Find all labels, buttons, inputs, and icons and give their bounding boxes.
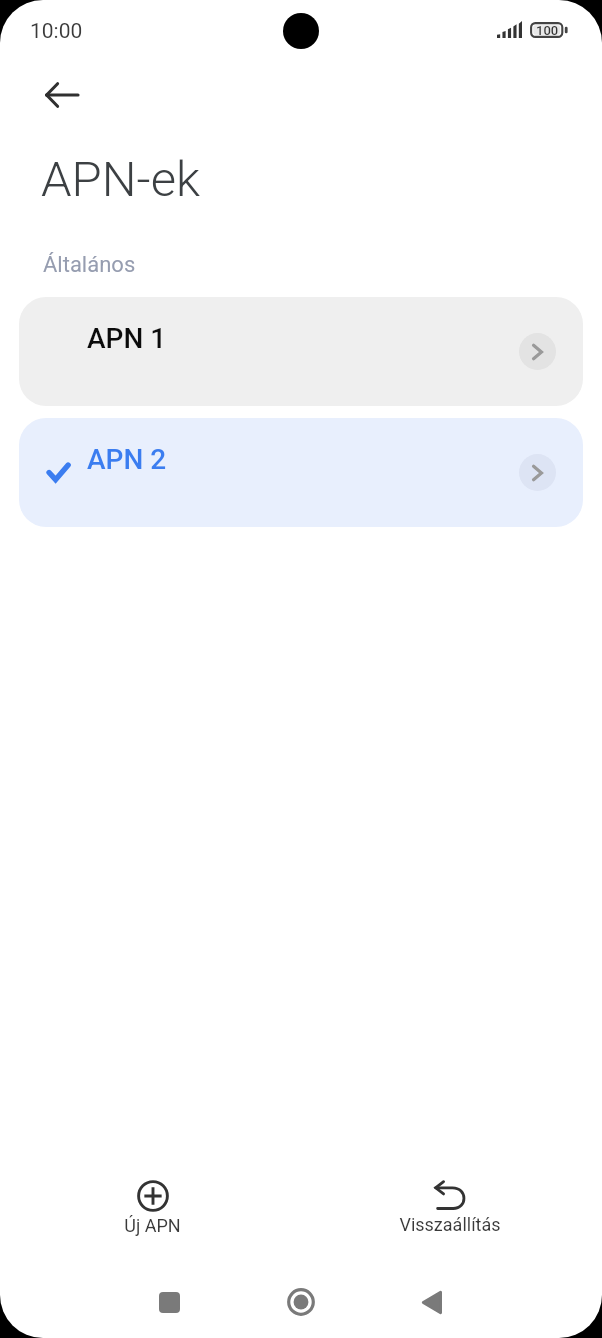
button[interactable]: APN 1 [19,297,583,406]
staticText: Visszaállítás [399,1214,501,1235]
button[interactable]: APN 2 [19,418,583,527]
button[interactable]: Recents [159,1292,180,1313]
button[interactable]: Back [39,72,85,118]
staticText: Új APN [124,1215,181,1236]
staticText: APN-ek [41,151,200,208]
button[interactable]: Visszaállítás [392,1180,508,1235]
staticText: 100 [536,23,559,38]
staticText: 10:00 [30,19,83,44]
staticText: APN 1 [87,322,167,355]
button[interactable]: Edit APN 1 [519,333,556,370]
staticText: Általános [43,252,136,278]
button[interactable]: Új APN [108,1180,196,1236]
button[interactable]: Home [287,1288,315,1316]
button[interactable]: Back [421,1290,442,1315]
button[interactable]: Edit APN 2 [519,454,556,491]
staticText: APN 2 [87,443,167,476]
